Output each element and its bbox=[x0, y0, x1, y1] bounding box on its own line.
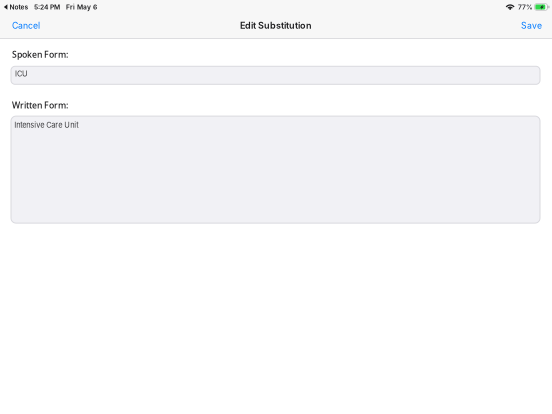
staticText: Written Form: bbox=[12, 99, 68, 111]
staticText: Intensive Care Unit bbox=[14, 120, 78, 129]
staticText: Edit Substitution bbox=[240, 20, 312, 31]
button[interactable]: Spoken Form text field bbox=[11, 66, 540, 84]
staticText: 5:24 PM bbox=[34, 3, 60, 11]
staticText: Fri May 6 bbox=[66, 3, 97, 11]
button[interactable]: Cancel bbox=[4, 15, 48, 36]
staticText: Save bbox=[521, 20, 542, 31]
staticText: ICU bbox=[15, 69, 28, 78]
button[interactable]: Written Form text view bbox=[11, 116, 540, 223]
staticText: 77% bbox=[518, 3, 533, 11]
button[interactable]: Save bbox=[513, 15, 550, 36]
staticText: Notes bbox=[10, 3, 29, 11]
staticText: Spoken Form: bbox=[12, 48, 68, 60]
staticText: Cancel bbox=[12, 20, 40, 31]
